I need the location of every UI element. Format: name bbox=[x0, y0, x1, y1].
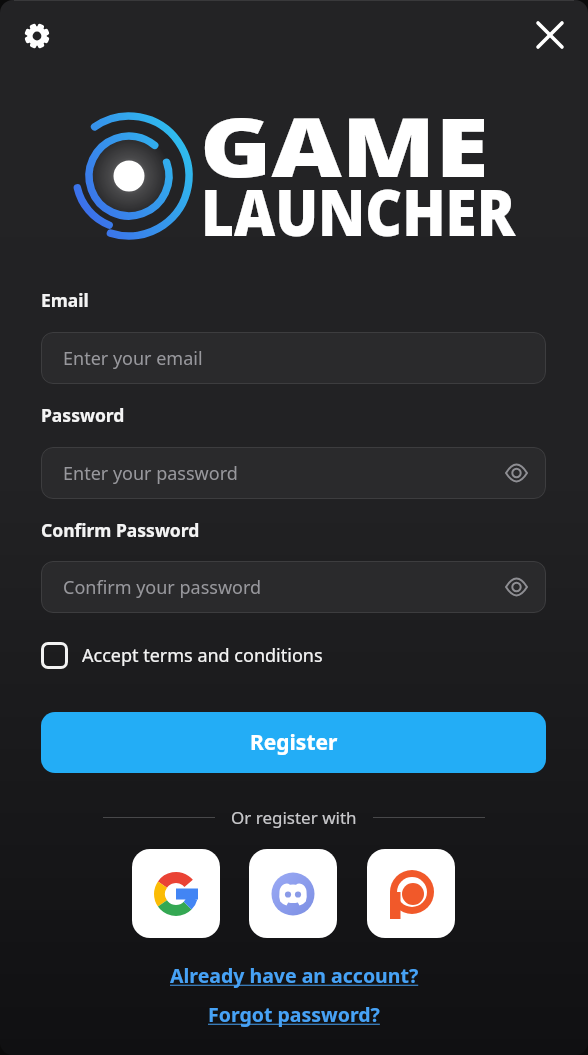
button[interactable]: Confirm your password bbox=[41, 561, 546, 613]
staticText: LAUNCHER bbox=[201, 169, 516, 255]
button[interactable]: Accept terms and conditions bbox=[41, 638, 323, 672]
staticText: Or register with bbox=[231, 806, 357, 828]
button[interactable]: Register bbox=[41, 712, 546, 773]
staticText: Email bbox=[41, 288, 89, 312]
button[interactable] bbox=[132, 849, 220, 938]
button[interactable] bbox=[23, 22, 51, 50]
button[interactable]: Forgot password? bbox=[208, 1001, 380, 1028]
button[interactable] bbox=[534, 19, 566, 51]
button[interactable]: Already have an account? bbox=[170, 962, 419, 989]
staticText: Password bbox=[41, 403, 125, 427]
button[interactable] bbox=[249, 849, 337, 938]
staticText: Register bbox=[250, 728, 338, 757]
button[interactable] bbox=[367, 849, 455, 938]
staticText: Confirm your password bbox=[63, 575, 262, 600]
staticText: Confirm Password bbox=[41, 518, 200, 542]
button[interactable]: Enter your password bbox=[41, 447, 546, 499]
staticText: Already have an account? bbox=[170, 962, 419, 989]
staticText: Enter your email bbox=[63, 346, 203, 371]
staticText: Accept terms and conditions bbox=[82, 643, 323, 668]
staticText: Forgot password? bbox=[208, 1001, 380, 1028]
staticText: GAME bbox=[200, 89, 489, 201]
button[interactable]: Enter your email bbox=[41, 332, 546, 384]
staticText: Enter your password bbox=[63, 461, 238, 486]
